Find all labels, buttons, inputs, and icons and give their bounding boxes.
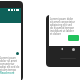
staticText: Lorem ipsum dolor sit amet consectetur a… (0, 56, 21, 71)
button[interactable]: Compose (16, 52, 19, 55)
button[interactable]: Back (60, 47, 64, 51)
staticText: Read more (0, 71, 15, 74)
button[interactable]: Accept (68, 35, 79, 41)
staticText: Lorem ipsum dolor sit amet consectetur a… (50, 17, 75, 35)
button[interactable]: Home (72, 48, 75, 51)
